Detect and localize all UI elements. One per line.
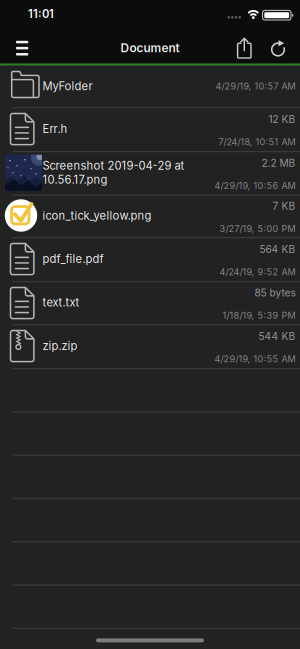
staticText: 4/29/19, 10:57 AM xyxy=(215,81,295,92)
button[interactable]: Err.h xyxy=(0,107,300,151)
staticText: Document xyxy=(120,41,179,55)
button[interactable]: Menu xyxy=(0,28,44,63)
staticText: MyFolder xyxy=(43,79,93,93)
staticText: 2.2 MB xyxy=(261,157,295,169)
button[interactable]: zip.zip xyxy=(0,324,300,368)
staticText: 1/18/19, 5:39 PM xyxy=(222,310,295,321)
staticText: pdf_file.pdf xyxy=(43,252,104,266)
staticText: 7 KB xyxy=(272,200,295,212)
staticText: text.txt xyxy=(43,296,80,309)
staticText: 4/29/19, 10:55 AM xyxy=(214,353,295,364)
staticText: Screenshot 2019-04-29 at xyxy=(43,159,185,172)
staticText: 544 KB xyxy=(258,330,295,342)
staticText: 12 KB xyxy=(268,113,295,125)
staticText: 85 bytes xyxy=(254,287,295,299)
button[interactable]: Refresh xyxy=(260,28,295,63)
staticText: 7/24/18, 10:51 AM xyxy=(218,136,295,147)
button[interactable]: text.txt xyxy=(0,281,300,324)
staticText: icon_tick_yellow.png xyxy=(43,209,152,223)
button[interactable]: Screenshot 2019-04-29 at xyxy=(0,151,300,194)
staticText: 4/29/19, 10:56 AM xyxy=(214,180,295,191)
staticText: 11:01 xyxy=(28,7,54,21)
staticText: Err.h xyxy=(43,122,68,136)
staticText: 3/27/19, 5:00 PM xyxy=(219,223,295,234)
staticText: zip.zip xyxy=(43,339,78,353)
button[interactable]: pdf_file.pdf xyxy=(0,237,300,281)
staticText: 10.56.17.png xyxy=(43,173,108,187)
button[interactable]: icon_tick_yellow.png xyxy=(0,194,300,237)
staticText: 564 KB xyxy=(259,243,295,255)
staticText: 4/24/19, 9:52 AM xyxy=(219,266,295,277)
button[interactable]: MyFolder xyxy=(0,65,300,107)
button[interactable]: Share xyxy=(230,28,260,63)
